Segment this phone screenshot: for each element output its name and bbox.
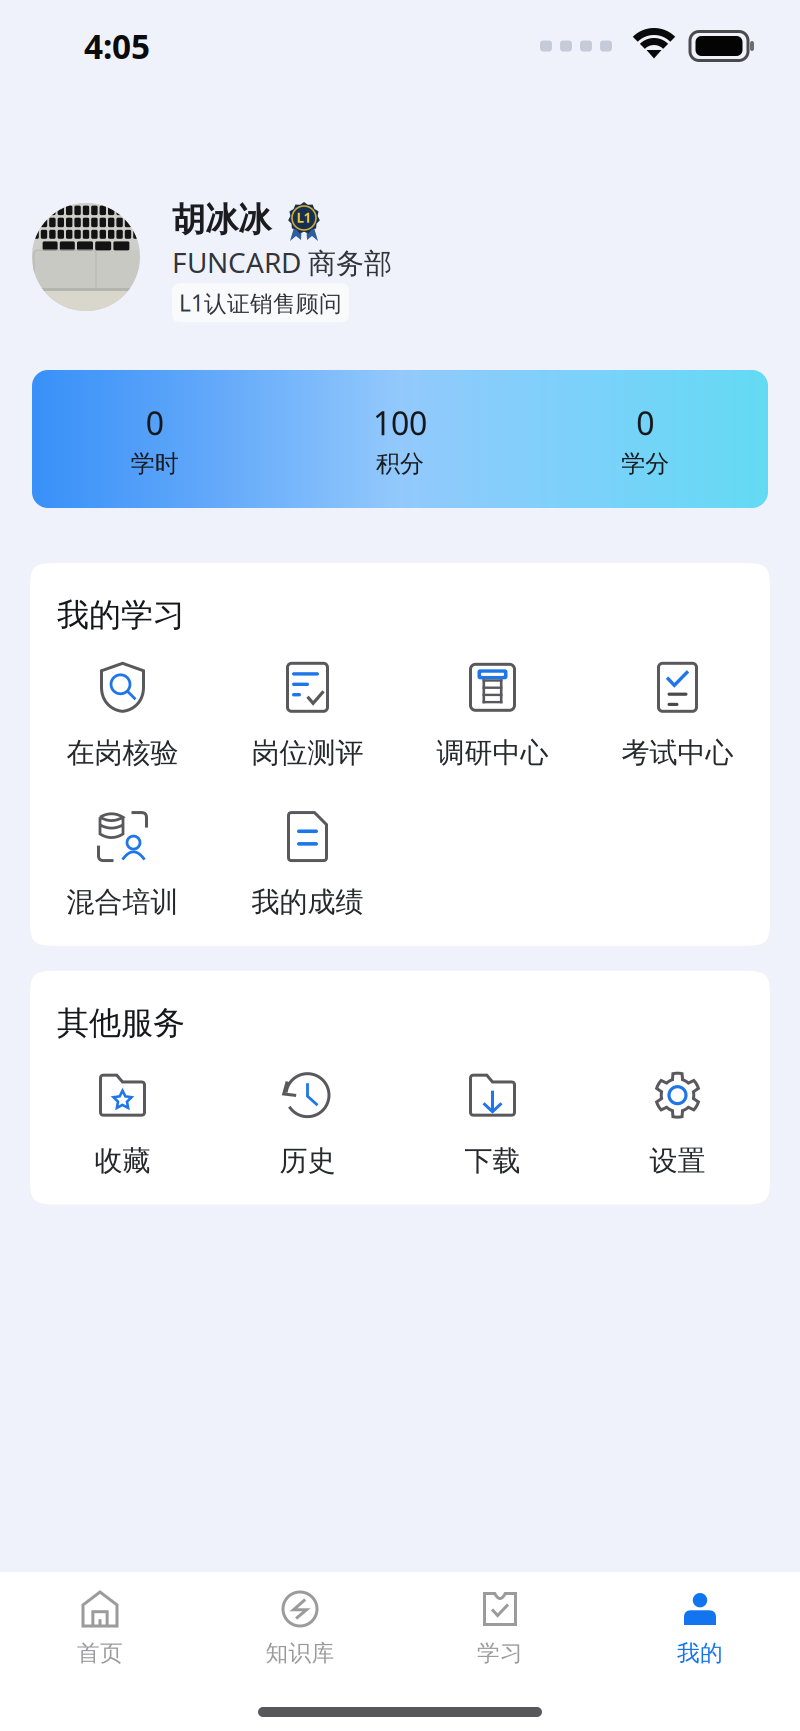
button[interactable]: 知识库 — [200, 1572, 400, 1668]
staticText: 调研中心 — [436, 735, 548, 771]
button[interactable]: 历史 — [215, 1069, 400, 1178]
button[interactable]: 下载 — [400, 1069, 585, 1178]
staticText: 100 — [373, 401, 427, 445]
staticText: 首页 — [77, 1639, 123, 1668]
staticText: 胡冰冰 — [172, 199, 271, 241]
staticText: 收藏 — [94, 1143, 150, 1178]
staticText: 学习 — [477, 1639, 523, 1668]
button[interactable]: 设置 — [585, 1069, 770, 1178]
staticText: 知识库 — [265, 1639, 334, 1668]
staticText: 我的学习 — [57, 595, 185, 635]
button[interactable]: 我的 — [600, 1572, 800, 1668]
staticText: 积分 — [376, 449, 424, 479]
button[interactable]: 岗位测评 — [215, 661, 400, 771]
staticText: 0 — [146, 401, 164, 445]
button[interactable]: 学习 — [400, 1572, 600, 1668]
staticText: 岗位测评 — [251, 735, 363, 771]
staticText: 其他服务 — [57, 1003, 185, 1043]
staticText: 历史 — [279, 1143, 335, 1178]
staticText: 我的成绩 — [251, 885, 363, 920]
staticText: 4:05 — [84, 23, 150, 69]
staticText: 考试中心 — [621, 735, 733, 771]
staticText: 设置 — [649, 1143, 705, 1178]
button[interactable]: 收藏 — [30, 1069, 215, 1178]
button[interactable]: 混合培训 — [30, 811, 215, 920]
staticText: 下载 — [464, 1143, 520, 1178]
button[interactable]: 我的成绩 — [215, 811, 400, 920]
staticText: 学时 — [131, 449, 179, 479]
staticText: L1认证销售顾问 — [179, 287, 342, 318]
staticText: 0 — [636, 401, 654, 445]
staticText: FUNCARD 商务部 — [172, 243, 392, 281]
staticText: L1 — [296, 208, 311, 227]
staticText: 混合培训 — [66, 885, 178, 920]
button[interactable]: 调研中心 — [400, 661, 585, 771]
button[interactable]: 考试中心 — [585, 661, 770, 771]
staticText: 学分 — [621, 449, 669, 479]
staticText: 在岗核验 — [66, 735, 178, 771]
button[interactable]: 首页 — [0, 1572, 200, 1668]
staticText: 我的 — [677, 1639, 723, 1668]
button[interactable]: 在岗核验 — [30, 661, 215, 771]
